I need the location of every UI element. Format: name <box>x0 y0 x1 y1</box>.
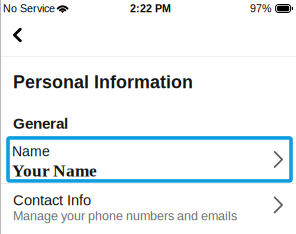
staticText: 2:22 PM <box>130 2 171 14</box>
button[interactable]: Back <box>0 23 35 50</box>
staticText: Name <box>12 143 50 159</box>
staticText: Personal Information <box>13 72 193 92</box>
button[interactable]: Name <box>8 138 291 181</box>
staticText: Manage your phone numbers and emails <box>13 209 237 223</box>
button[interactable]: Contact Info <box>0 184 296 226</box>
staticText: Your Name <box>12 161 97 180</box>
staticText: General <box>13 115 68 132</box>
staticText: 97% <box>250 2 271 14</box>
staticText: Contact Info <box>13 192 91 208</box>
staticText: No Service <box>3 2 55 14</box>
